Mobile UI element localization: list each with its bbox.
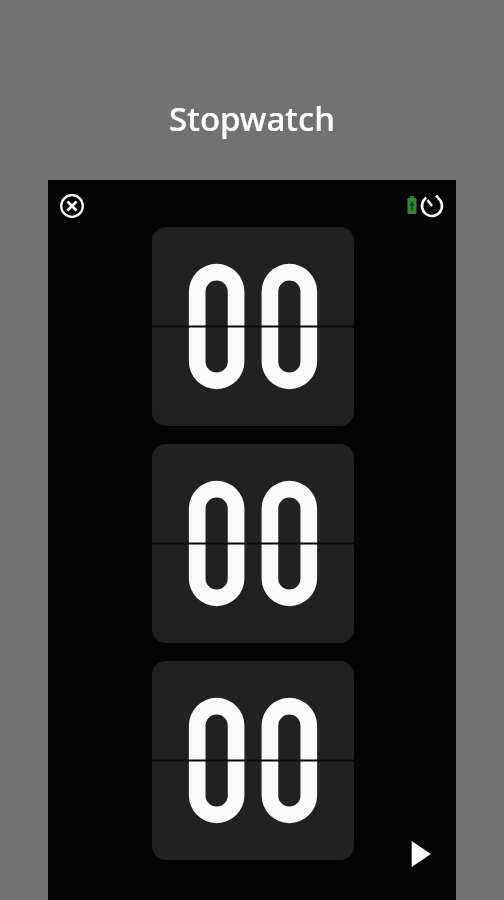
button[interactable]: Close [56,190,88,222]
button[interactable] [152,227,354,426]
staticText: Stopwatch [0,96,504,900]
button[interactable] [152,444,354,643]
button[interactable] [152,661,354,860]
button[interactable]: Reset [416,189,448,221]
button[interactable]: Start [396,830,444,878]
